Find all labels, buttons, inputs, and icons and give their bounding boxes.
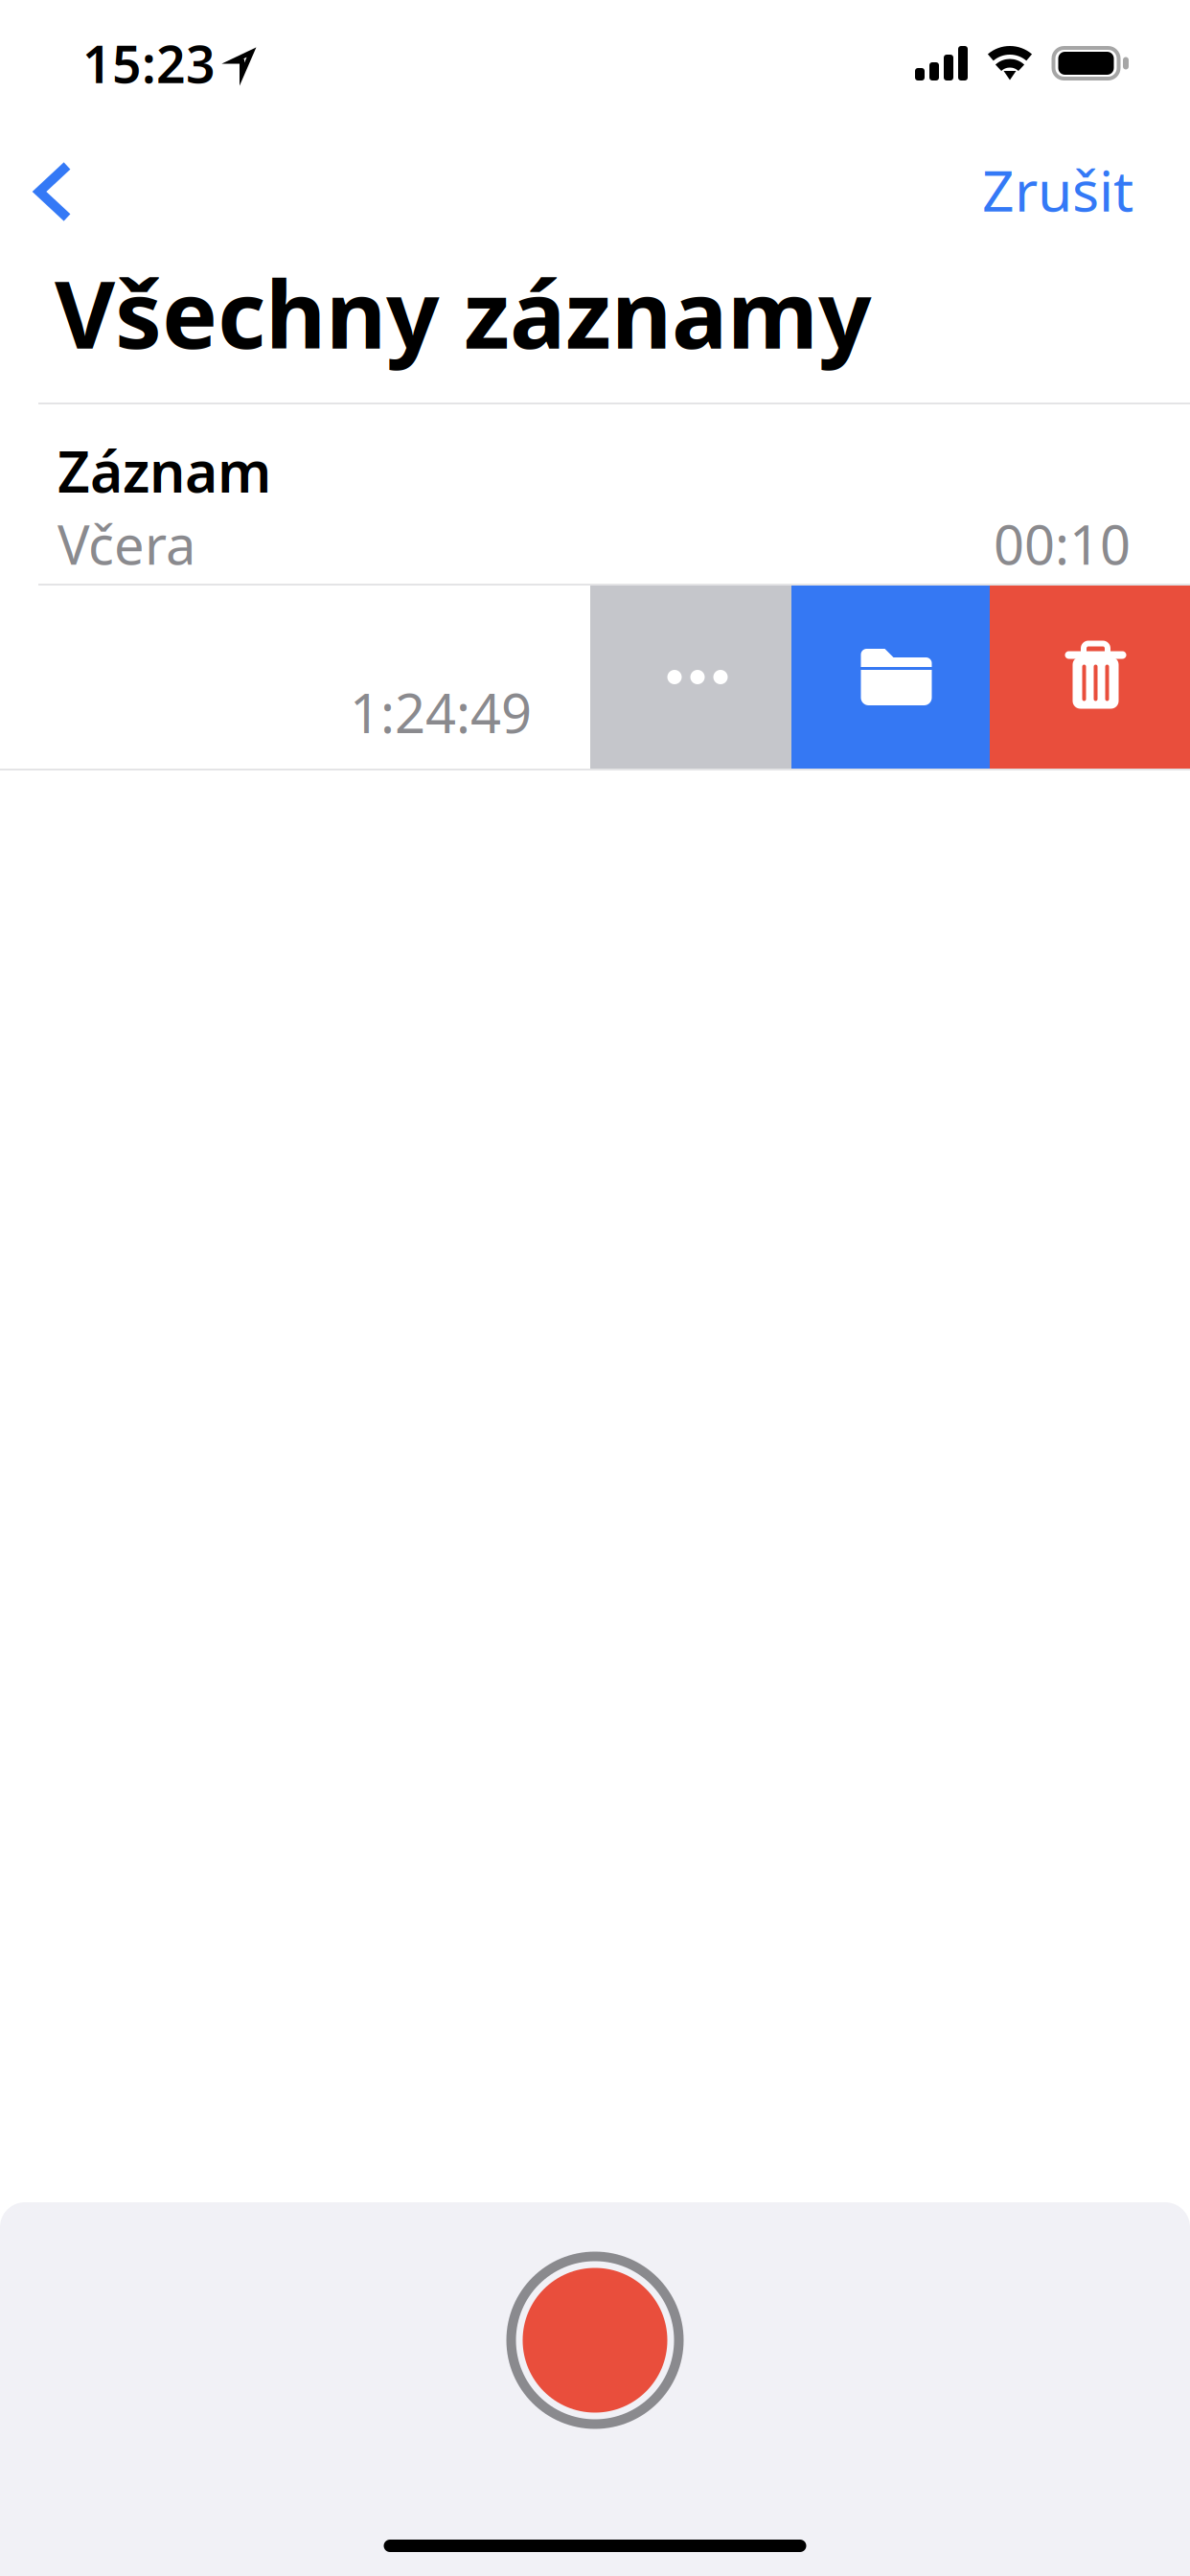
staticText: Všechny záznamy [55, 251, 872, 374]
button[interactable]: Záznam [0, 404, 1190, 584]
staticText: Zrušit [982, 152, 1133, 227]
staticText: Včera [57, 508, 195, 580]
button[interactable]: Move to Folder [791, 586, 990, 769]
button[interactable]: Delete [990, 586, 1190, 769]
staticText: 1:24:49 [350, 677, 532, 748]
staticText: Záznam [57, 434, 271, 508]
staticText: 00:10 [994, 508, 1131, 580]
button[interactable]: Back [0, 126, 120, 222]
button[interactable]: Record [504, 2249, 686, 2431]
staticText: 15:23 [82, 29, 216, 97]
button[interactable]: Zrušit [944, 126, 1190, 222]
button[interactable]: More [590, 586, 791, 769]
